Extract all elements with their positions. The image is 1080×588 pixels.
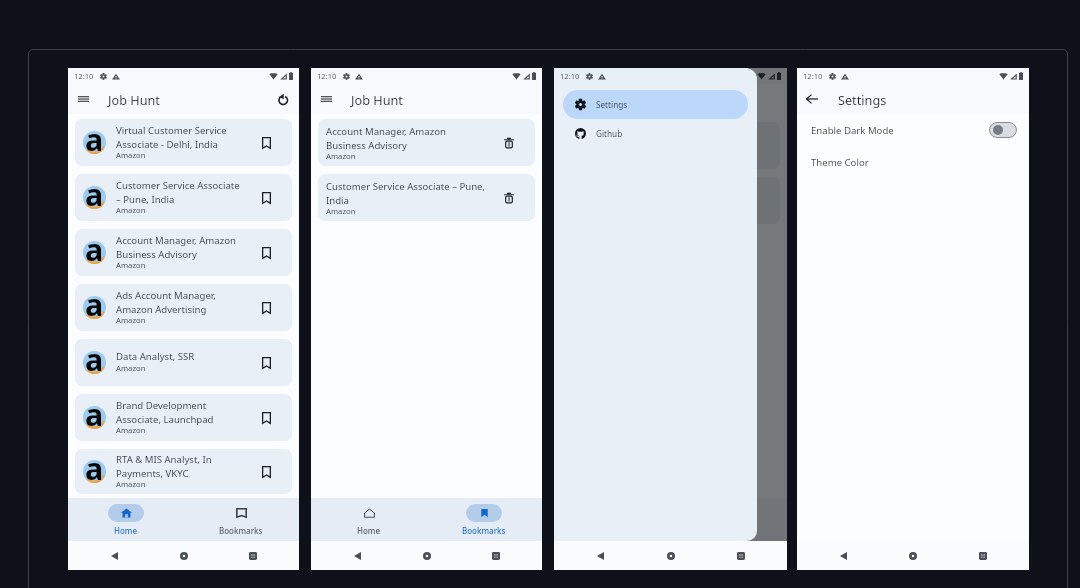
button[interactable]: Home xyxy=(903,546,923,566)
staticText: a xyxy=(85,229,104,270)
button[interactable]: Settings xyxy=(563,90,748,119)
button[interactable]: a xyxy=(75,229,292,276)
button[interactable]: Recents xyxy=(486,546,506,566)
button[interactable]: Back xyxy=(590,546,610,566)
staticText: RTA & MIS Analyst, In Payments, VKYC xyxy=(116,453,212,479)
button[interactable]: Bookmark xyxy=(258,410,274,426)
staticText: Account Manager, Amazon Business Advisor… xyxy=(116,234,236,260)
staticText: 12:10 xyxy=(560,71,580,81)
staticText: 12:10 xyxy=(74,71,94,81)
button[interactable]: a xyxy=(75,449,292,494)
staticText: Github xyxy=(596,128,623,139)
staticText: a xyxy=(85,394,104,435)
button[interactable]: Bookmark xyxy=(258,300,274,316)
staticText: Amazon xyxy=(326,206,356,216)
button[interactable]: Customer Service Associate – Pune, India xyxy=(318,174,535,221)
staticText: Bookmarks xyxy=(462,525,506,536)
staticText: Bookmarks xyxy=(219,525,263,536)
staticText: Account Manager, Amazon Business Advisor… xyxy=(326,125,446,151)
button[interactable]: a xyxy=(75,119,292,166)
staticText: Amazon xyxy=(116,363,146,373)
button[interactable]: Home xyxy=(174,546,194,566)
button[interactable]: Theme Color xyxy=(797,151,1029,173)
staticText: Theme Color xyxy=(811,156,869,169)
staticText: Customer Service Associate – Pune, India xyxy=(326,180,486,206)
staticText: Settings xyxy=(596,99,628,110)
staticText: a xyxy=(85,284,104,325)
staticText: Ads Account Manager, Amazon Advertising xyxy=(116,289,216,315)
button[interactable]: Recents xyxy=(973,546,993,566)
button[interactable]: Back xyxy=(104,546,124,566)
button[interactable]: Bookmarks xyxy=(426,498,542,541)
button[interactable]: Recents xyxy=(731,546,751,566)
button[interactable]: Delete xyxy=(501,190,517,206)
button[interactable]: Home xyxy=(68,498,183,541)
button[interactable]: Bookmark xyxy=(258,135,274,151)
staticText: 12:10 xyxy=(803,71,823,81)
button[interactable]: Back xyxy=(803,90,821,108)
button[interactable]: Back xyxy=(833,546,853,566)
button[interactable]: Bookmark xyxy=(258,464,274,480)
staticText: Customer Service Associate – Pune, India xyxy=(116,179,240,205)
staticText: Home xyxy=(114,525,138,536)
staticText: Amazon xyxy=(116,425,146,435)
staticText: Brand Development Associate, Launchpad xyxy=(116,399,214,425)
button[interactable]: Menu xyxy=(74,90,92,108)
staticText: Data Analyst, SSR xyxy=(116,350,195,363)
button[interactable]: a xyxy=(75,394,292,441)
button[interactable]: Menu xyxy=(317,90,335,108)
button[interactable]: Delete xyxy=(501,135,517,151)
button[interactable]: Enable Dark Mode xyxy=(797,119,1029,141)
button[interactable]: Home xyxy=(417,546,437,566)
button[interactable]: Github xyxy=(563,119,748,148)
button[interactable]: Bookmark xyxy=(258,355,274,371)
staticText: a xyxy=(85,119,104,160)
staticText: Amazon xyxy=(116,205,146,215)
staticText: Job Hunt xyxy=(108,91,160,108)
staticText: Amazon xyxy=(116,315,146,325)
staticText: Home xyxy=(357,525,381,536)
staticText: Settings xyxy=(838,91,887,108)
staticText: Amazon xyxy=(116,150,146,160)
button[interactable]: Recents xyxy=(243,546,263,566)
button[interactable]: a xyxy=(75,174,292,221)
staticText: Amazon xyxy=(116,260,146,270)
button[interactable]: Bookmark xyxy=(258,190,274,206)
staticText: a xyxy=(85,449,104,489)
staticText: a xyxy=(85,174,104,215)
button[interactable]: Bookmark xyxy=(258,245,274,261)
staticText: Virtual Customer Service Associate - Del… xyxy=(116,124,227,150)
staticText: Enable Dark Mode xyxy=(811,124,894,137)
button[interactable]: Refresh xyxy=(274,90,292,108)
button[interactable]: a xyxy=(75,339,292,386)
staticText: a xyxy=(85,339,104,380)
button[interactable]: a xyxy=(75,284,292,331)
button[interactable]: Account Manager, Amazon Business Advisor… xyxy=(318,119,535,166)
button[interactable]: Back xyxy=(347,546,367,566)
button[interactable]: Bookmarks xyxy=(183,498,299,541)
button[interactable]: Home xyxy=(661,546,681,566)
staticText: Amazon xyxy=(326,151,356,161)
staticText: Amazon xyxy=(116,479,146,489)
staticText: Job Hunt xyxy=(351,91,403,108)
staticText: 12:10 xyxy=(317,71,337,81)
button[interactable]: Home xyxy=(311,498,426,541)
